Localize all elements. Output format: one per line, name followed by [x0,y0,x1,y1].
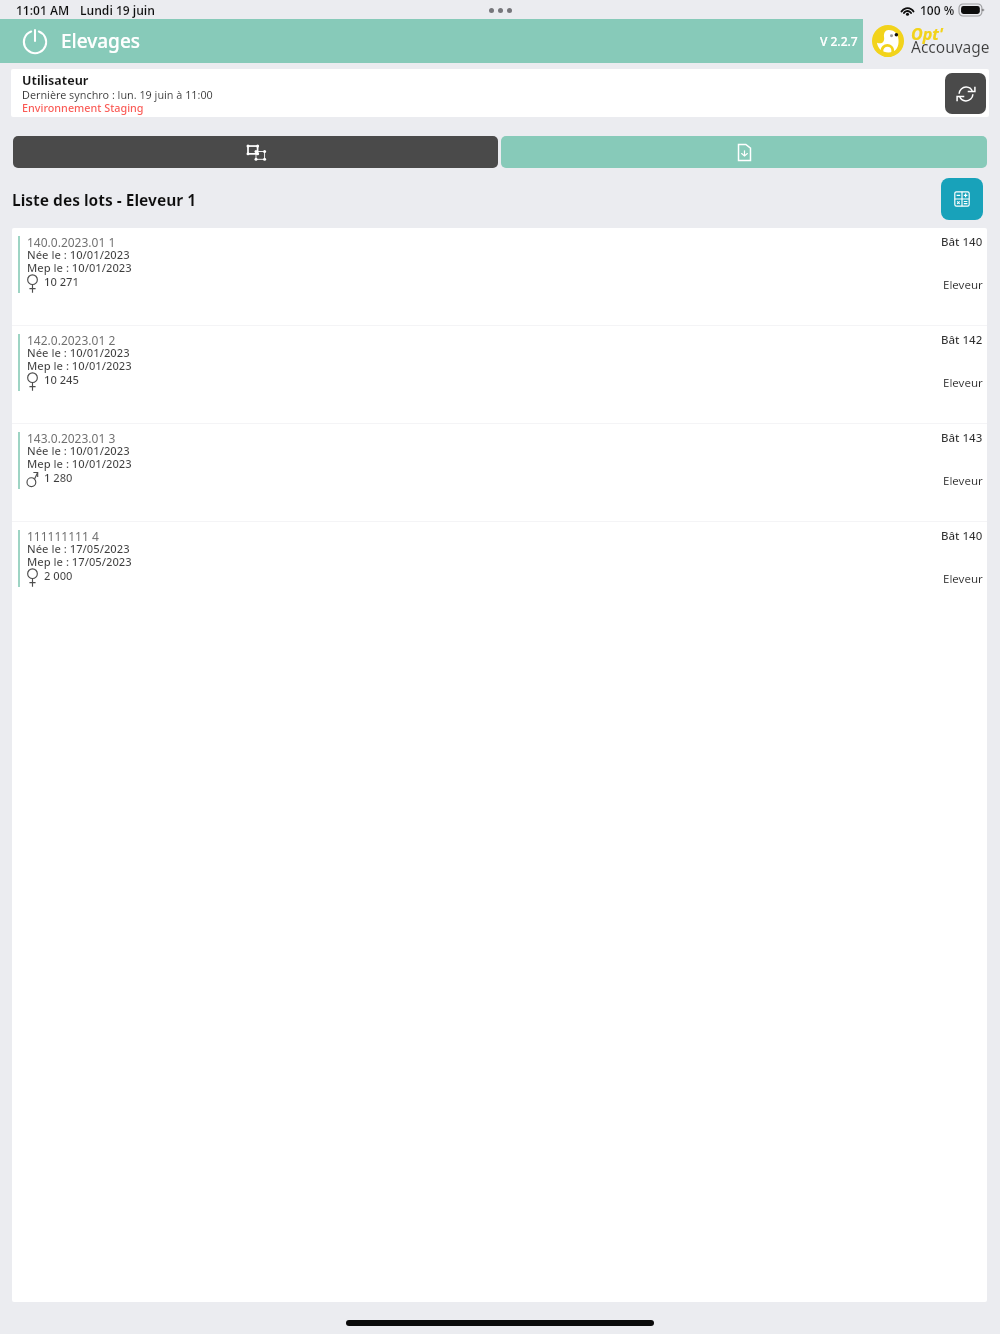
button[interactable]: Déconnexion [19,25,51,57]
staticText: Utilisateur [22,72,89,89]
button[interactable]: Synchroniser [945,73,986,114]
staticText: Bât 140 [941,234,983,250]
staticText: Bât 142 [941,332,983,348]
staticText: Née le : 17/05/2023 [27,541,130,556]
staticText: 10 245 [44,372,79,387]
staticText: Eleveur [943,473,983,489]
button[interactable]: 111111111 4 [12,522,987,619]
staticText: Bât 140 [941,528,983,544]
staticText: Opt' [911,23,944,45]
staticText: Née le : 10/01/2023 [27,345,130,360]
button[interactable]: Calculatrice [941,178,983,220]
button[interactable]: Documents [501,136,987,168]
staticText: Accouvage [911,36,990,57]
staticText: Liste des lots - Eleveur 1 [12,189,197,210]
staticText: Mep le : 10/01/2023 [27,456,132,471]
staticText: 1 280 [44,470,73,485]
staticText: Bât 143 [941,430,983,446]
staticText: V 2.2.7 [820,33,858,49]
staticText: Mep le : 17/05/2023 [27,554,132,569]
button[interactable]: 140.0.2023.01 1 [12,228,987,325]
staticText: Mep le : 10/01/2023 [27,260,132,275]
staticText: 140.0.2023.01 1 [27,234,116,250]
staticText: Dernière synchro : lun. 19 juin à 11:00 [22,87,213,102]
staticText: 100 % [920,2,955,18]
staticText: Née le : 10/01/2023 [27,247,130,262]
staticText: Elevages [61,28,141,54]
staticText: 2 000 [44,568,73,583]
staticText: 11:01 AM [16,2,70,18]
button[interactable]: 142.0.2023.01 2 [12,326,987,423]
staticText: Mep le : 10/01/2023 [27,358,132,373]
staticText: Eleveur [943,277,983,293]
staticText: 10 271 [44,274,79,289]
button[interactable]: 143.0.2023.01 3 [12,424,987,521]
staticText: Environnement Staging [22,100,144,115]
staticText: 142.0.2023.01 2 [27,332,116,348]
staticText: 143.0.2023.01 3 [27,430,116,446]
staticText: Lundi 19 juin [80,2,155,18]
button[interactable]: Lots [13,136,498,168]
staticText: Eleveur [943,571,983,587]
staticText: Eleveur [943,375,983,391]
staticText: Née le : 10/01/2023 [27,443,130,458]
staticText: 111111111 4 [27,528,99,544]
